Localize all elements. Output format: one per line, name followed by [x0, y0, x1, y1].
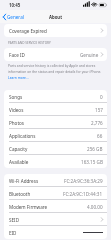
- button[interactable]: Available: [4, 155, 107, 168]
- button[interactable]: Photos: [4, 116, 107, 129]
- button[interactable]: Coverage Expired: [4, 24, 107, 37]
- staticText: 163.15 GB: [81, 159, 103, 165]
- staticText: General: [7, 14, 24, 20]
- staticText: 10:45: [9, 2, 21, 8]
- staticText: 2,776: [91, 120, 103, 126]
- button[interactable]: Songs: [4, 90, 107, 103]
- button[interactable]: Wi-Fi Address: [4, 174, 107, 187]
- staticText: Face ID: [9, 52, 25, 58]
- staticText: Wi-Fi Address: [9, 178, 39, 184]
- button[interactable]: Face ID: [4, 48, 107, 61]
- staticText: 4.00.00: [87, 204, 103, 210]
- staticText: About: [49, 14, 63, 20]
- button[interactable]: Bluetooth: [4, 187, 107, 200]
- staticText: 157: [95, 107, 103, 113]
- staticText: 256 GB: [87, 146, 103, 152]
- staticText: FC:2A:9C:36:3A:29: [64, 178, 103, 184]
- staticText: SEID: [9, 217, 19, 223]
- button[interactable]: SEID: [4, 213, 107, 226]
- staticText: 66: [97, 133, 103, 139]
- button[interactable]: Modem Firmware: [4, 200, 107, 213]
- staticText: Available: [9, 159, 29, 165]
- staticText: Genuine: [80, 52, 99, 58]
- staticText: Capacity: [9, 146, 28, 152]
- button[interactable]: Applications: [4, 129, 107, 142]
- staticText: Photos: [9, 120, 25, 126]
- staticText: Modem Firmware: [9, 204, 48, 210]
- staticText: Songs: [9, 94, 23, 100]
- staticText: FC:2A:9C:1D:44:31: [63, 191, 103, 197]
- staticText: Applications: [9, 133, 36, 139]
- staticText: Parts and service history is collected b…: [8, 63, 104, 80]
- button[interactable]: EID: [4, 226, 107, 239]
- staticText: EID: [9, 230, 17, 236]
- button[interactable]: Videos: [4, 103, 107, 116]
- staticText: PARTS AND SERVICE HISTORY: [8, 41, 51, 45]
- staticText: 0: [100, 94, 103, 100]
- staticText: Bluetooth: [9, 191, 31, 197]
- staticText: Coverage Expired: [9, 28, 47, 34]
- staticText: Videos: [9, 107, 24, 113]
- button[interactable]: Capacity: [4, 142, 107, 155]
- button[interactable]: General: [3, 14, 24, 20]
